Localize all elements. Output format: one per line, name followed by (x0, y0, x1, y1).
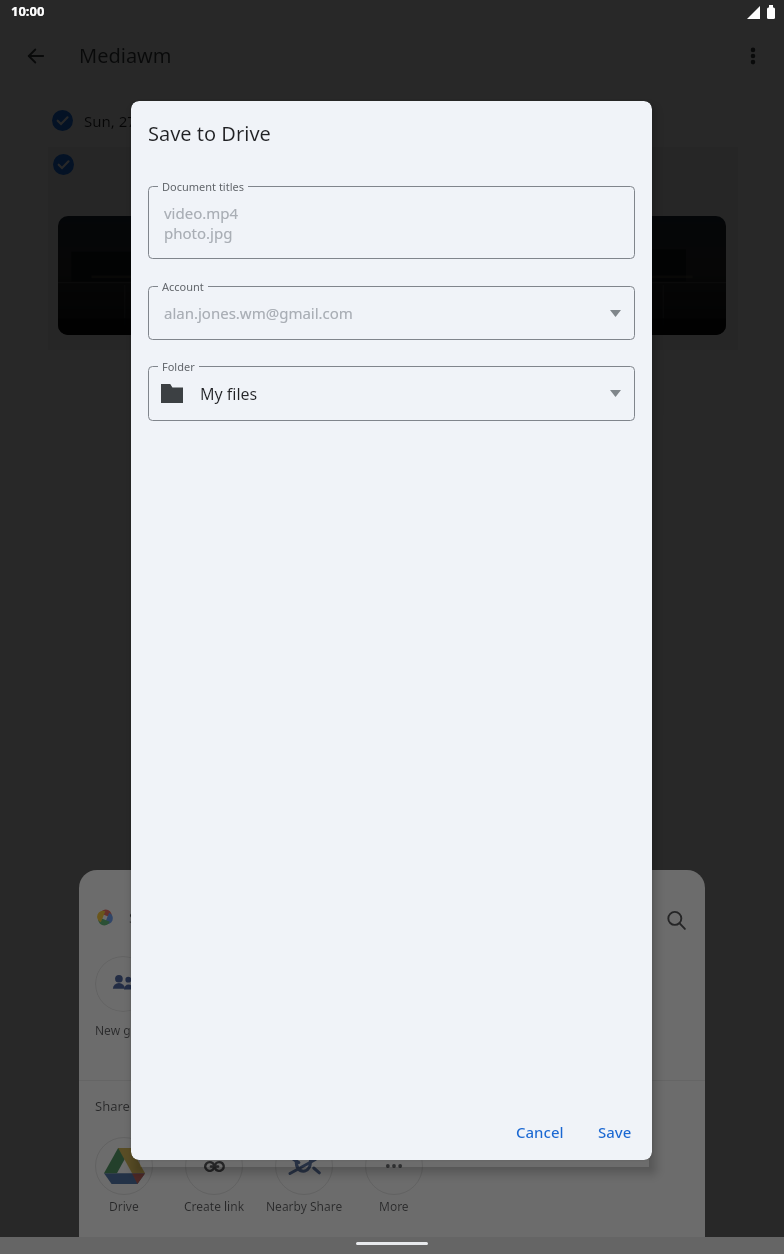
button[interactable]: More (349, 1137, 439, 1214)
staticText: Create link (184, 1198, 245, 1214)
staticText: Mediawm (79, 42, 172, 69)
button[interactable]: Back (18, 38, 53, 73)
staticText: New group (95, 1022, 158, 1038)
staticText: Nearby Share (266, 1198, 343, 1214)
button[interactable]: Search (661, 905, 691, 935)
button[interactable]: More options (735, 38, 770, 73)
button[interactable]: Create link (169, 1137, 259, 1214)
staticText: Document titles (162, 179, 244, 194)
staticText: Cancel (516, 1122, 564, 1142)
button[interactable] (95, 956, 151, 1012)
staticText: My files (200, 383, 258, 405)
button[interactable]: Save (588, 1114, 642, 1150)
staticText: Share (129, 907, 170, 927)
staticText: Save (598, 1122, 632, 1142)
staticText: More (379, 1198, 409, 1214)
staticText: photo.jpg (164, 223, 233, 243)
staticText: Folder (162, 359, 195, 374)
staticText: alan.jones.wm@gmail.com (164, 303, 353, 323)
staticText: Save to Drive (148, 120, 271, 147)
button[interactable]: Cancel (506, 1114, 574, 1150)
staticText: video.mp4 (164, 203, 239, 223)
staticText: Sun, 27 Mar (84, 111, 168, 131)
button[interactable]: Nearby Share (259, 1137, 349, 1214)
button[interactable]: Drive (79, 1137, 169, 1214)
staticText: Share to (95, 1097, 146, 1115)
staticText: 10:00 (11, 2, 45, 20)
staticText: Account (162, 279, 204, 294)
staticText: Drive (109, 1198, 139, 1214)
